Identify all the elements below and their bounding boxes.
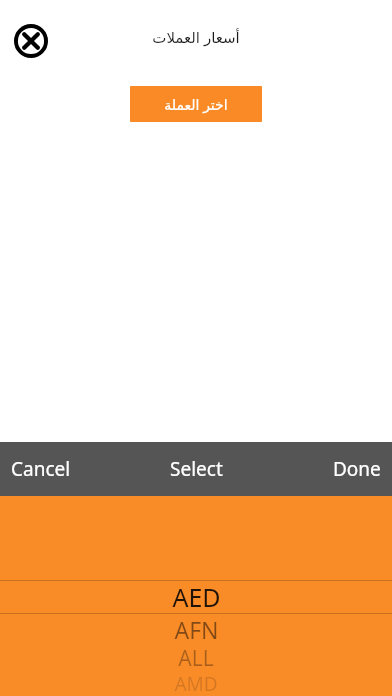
button[interactable]: AED [0, 580, 392, 613]
staticText: Select [170, 456, 223, 482]
staticText: Done [333, 456, 381, 482]
staticText: AFN [174, 614, 219, 644]
button[interactable]: Select [146, 442, 246, 496]
staticText: اختر العملة [164, 95, 228, 114]
staticText: ALL [178, 644, 214, 671]
staticText: AMD [174, 671, 218, 695]
button[interactable]: اختر العملة [130, 86, 262, 122]
staticText: أسعار العملات [0, 27, 392, 47]
button[interactable]: Close [13, 23, 49, 59]
staticText: Cancel [11, 456, 71, 482]
button[interactable]: Done [302, 442, 392, 496]
button[interactable]: ALL [0, 644, 392, 671]
button[interactable]: AFN [0, 614, 392, 644]
staticText: AED [172, 580, 221, 613]
button[interactable]: AMD [0, 671, 392, 695]
button[interactable]: Cancel [0, 442, 90, 496]
